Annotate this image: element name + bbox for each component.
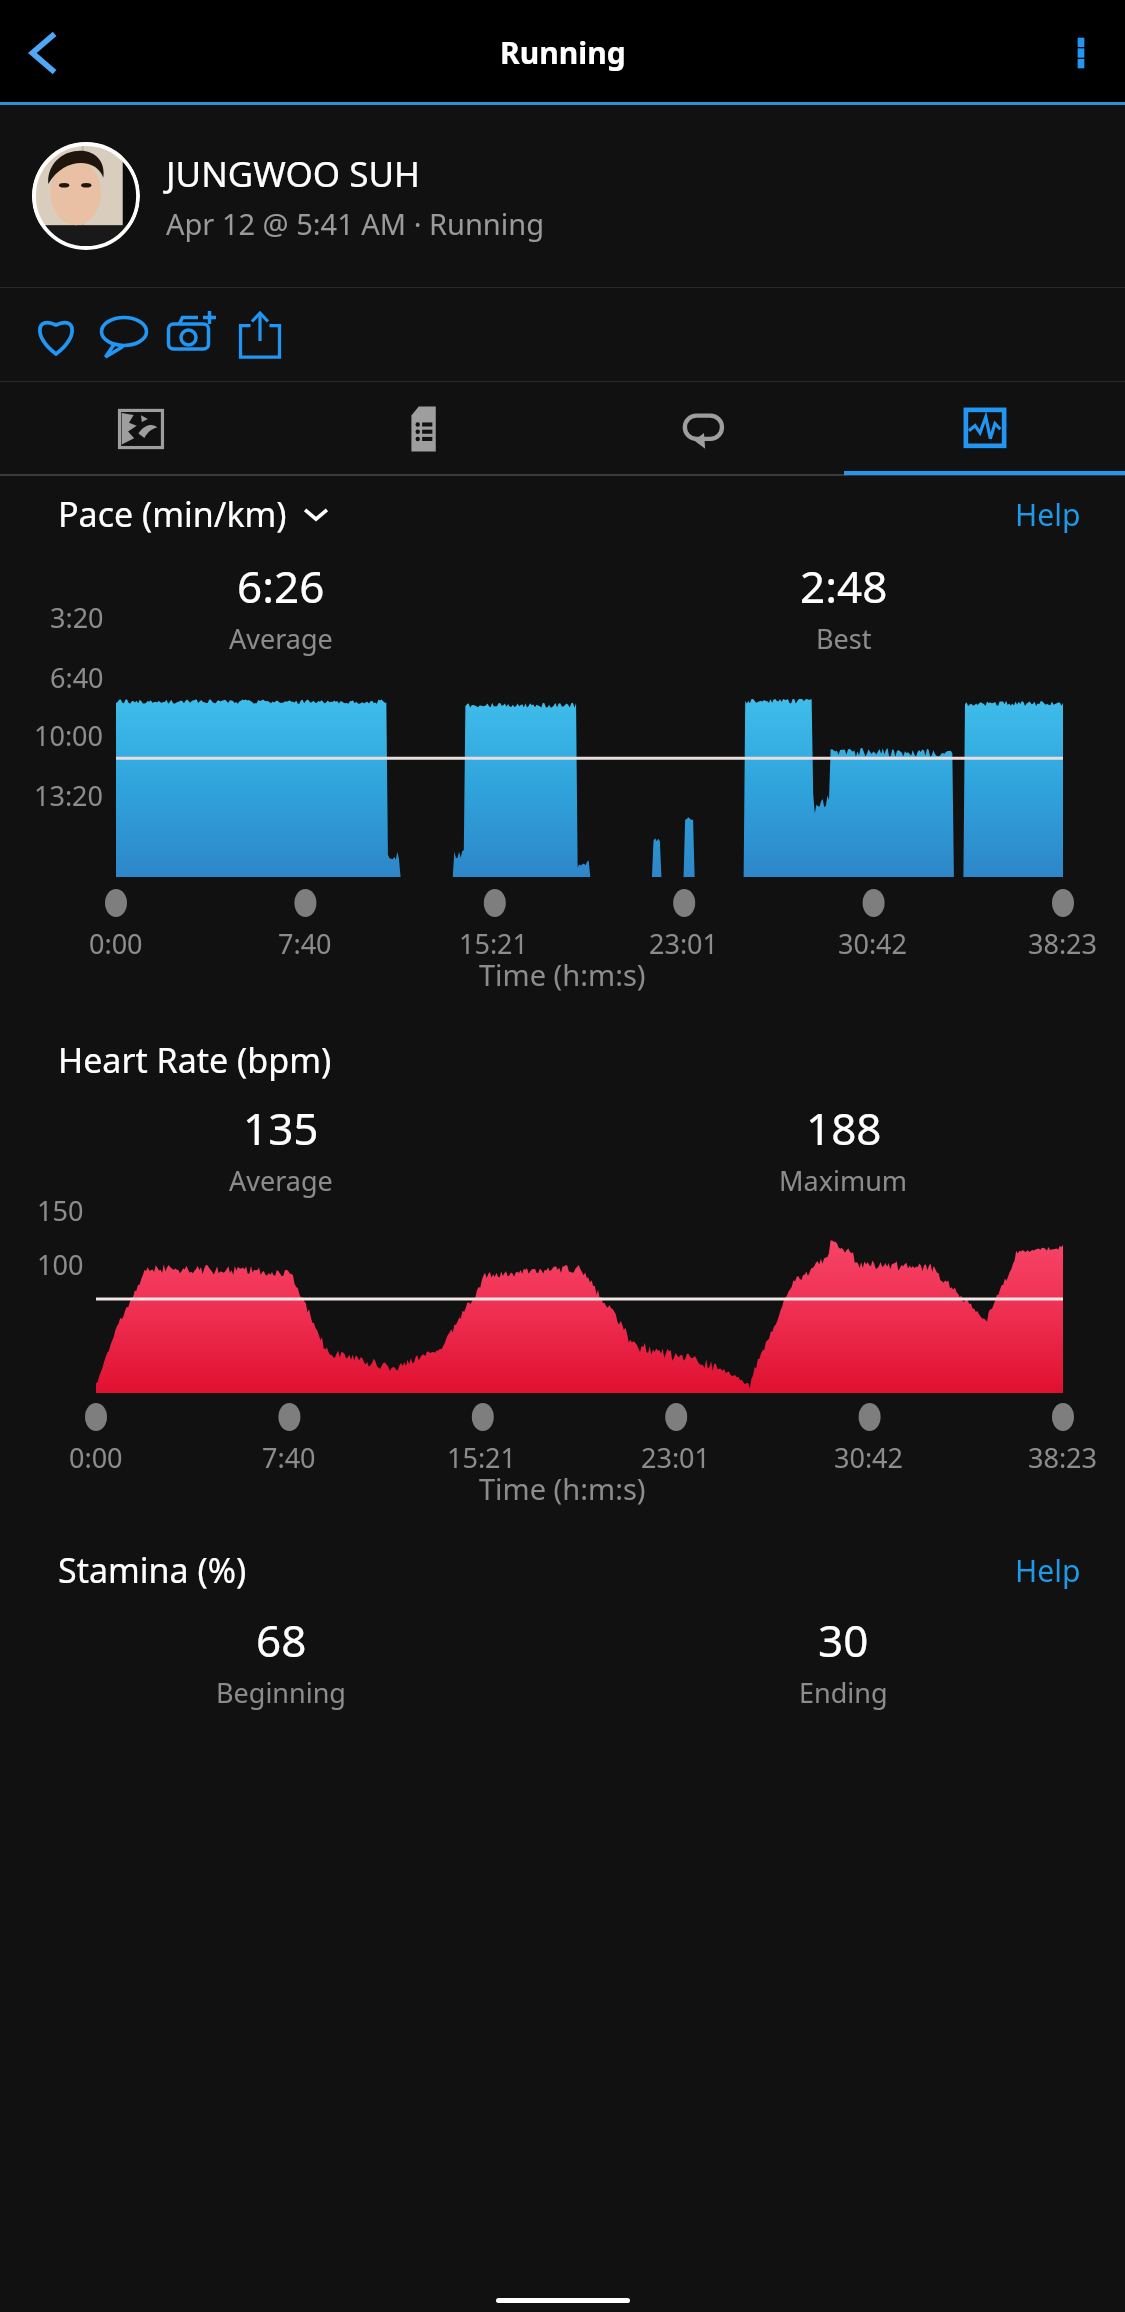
staticText: Apr 12 @ 5:41 AM · Running (166, 204, 545, 243)
staticText: JUNGWOO SUH (166, 150, 420, 198)
staticText: 2:48 (800, 556, 888, 616)
button[interactable]: Details (282, 382, 563, 475)
staticText: 30:42 (838, 925, 908, 997)
staticText: 38:23 (1028, 925, 1098, 997)
button[interactable]: Help (1015, 1550, 1081, 1591)
staticText: 30:42 (834, 1439, 904, 1511)
staticText: 3:20 (50, 599, 104, 799)
staticText: 13:20 (34, 777, 104, 977)
button[interactable]: Help (1015, 494, 1081, 535)
staticText: 135 (243, 1098, 319, 1158)
staticText: Pace (min/km) (58, 491, 287, 537)
staticText: Average (229, 620, 333, 657)
staticText: 7:40 (262, 1439, 316, 1511)
staticText: 30 (818, 1610, 869, 1670)
staticText: Time (h:m:s) (479, 955, 646, 994)
button[interactable]: Map (0, 382, 282, 475)
staticText: 15:21 (459, 925, 529, 997)
staticText: 0:00 (89, 925, 143, 997)
staticText: 6:26 (237, 556, 325, 616)
button[interactable]: Like (22, 301, 90, 369)
button[interactable]: JUNGWOO SUH (0, 105, 1125, 287)
staticText: Heart Rate (bpm) (58, 1037, 332, 1083)
staticText: 6:40 (50, 659, 104, 859)
staticText: 38:23 (1028, 1439, 1098, 1511)
staticText: Best (816, 620, 872, 657)
staticText: 68 (256, 1610, 307, 1670)
staticText: Running (500, 32, 626, 73)
staticText: Average (229, 1162, 333, 1199)
staticText: Stamina (%) (58, 1547, 247, 1593)
staticText: Beginning (216, 1674, 346, 1711)
staticText: 150 (37, 1192, 84, 1362)
staticText: Ending (799, 1674, 888, 1711)
staticText: 7:40 (278, 925, 332, 997)
staticText: 10:00 (34, 717, 104, 917)
staticText: 188 (806, 1098, 882, 1158)
button[interactable]: Back (8, 20, 74, 86)
button[interactable]: Add photo (158, 301, 226, 369)
staticText: 0:00 (69, 1439, 123, 1511)
staticText: 15:21 (447, 1439, 517, 1511)
button[interactable]: Comment (90, 301, 158, 369)
button[interactable]: Share (226, 301, 294, 369)
staticText: Maximum (779, 1162, 908, 1199)
staticText: 100 (37, 1246, 84, 1416)
button[interactable]: Pace (min/km) (58, 491, 329, 537)
staticText: Time (h:m:s) (479, 1469, 646, 1508)
staticText: Help (1015, 1550, 1081, 1591)
button[interactable]: Laps (563, 382, 844, 475)
button[interactable]: More options (1053, 25, 1109, 81)
staticText: 23:01 (649, 925, 719, 997)
staticText: 23:01 (641, 1439, 711, 1511)
staticText: Help (1015, 494, 1081, 535)
button[interactable]: Charts (844, 382, 1125, 475)
